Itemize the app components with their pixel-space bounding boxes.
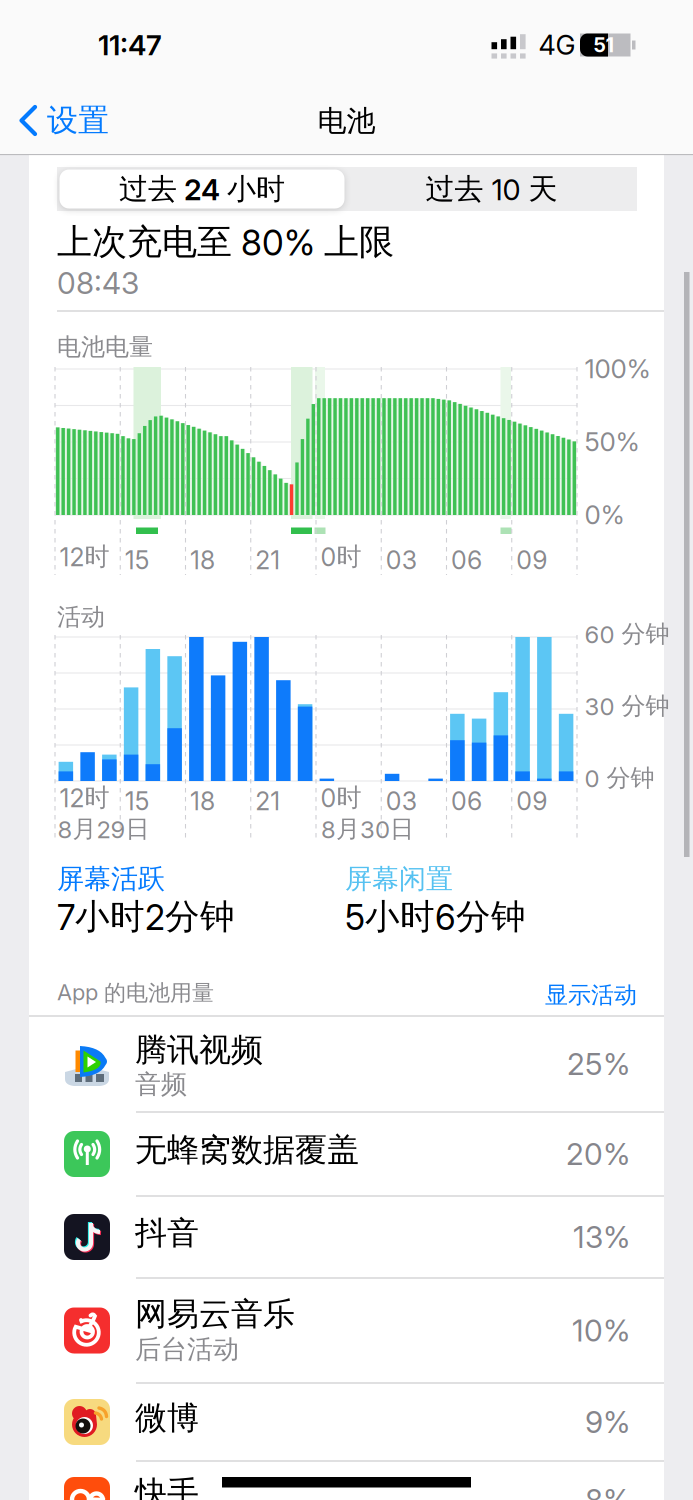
button[interactable]: 过去 10 天 bbox=[349, 169, 634, 208]
staticText: 设置 bbox=[47, 101, 109, 140]
staticText: 12时 bbox=[59, 541, 109, 572]
staticText: 过去 10 天 bbox=[425, 171, 557, 207]
staticText: 30 分钟 bbox=[584, 691, 669, 721]
button[interactable]: 设置 bbox=[19, 87, 109, 154]
staticText: 0% bbox=[584, 499, 624, 530]
button[interactable]: 腾讯视频 bbox=[29, 1016, 664, 1112]
staticText: 51 bbox=[593, 33, 614, 57]
staticText: 屏幕闲置 bbox=[345, 862, 453, 896]
staticText: 过去 24 小时 bbox=[119, 171, 285, 207]
staticText: 18 bbox=[190, 545, 215, 575]
staticText: 4G bbox=[538, 29, 575, 61]
staticText: 腾讯视频 bbox=[135, 1030, 263, 1070]
staticText: 屏幕活跃 bbox=[57, 862, 165, 896]
button[interactable]: 显示活动 bbox=[437, 973, 637, 1017]
staticText: 8% bbox=[585, 1482, 630, 1500]
staticText: 18 bbox=[190, 786, 215, 816]
staticText: 21 bbox=[255, 786, 280, 816]
button[interactable]: 无蜂窝数据覆盖 bbox=[29, 1112, 664, 1196]
staticText: 06 bbox=[451, 545, 482, 575]
staticText: 03 bbox=[386, 786, 417, 816]
staticText: 11:47 bbox=[98, 28, 162, 62]
staticText: 100% bbox=[584, 353, 650, 384]
staticText: 10% bbox=[572, 1312, 630, 1349]
staticText: 无蜂窝数据覆盖 bbox=[135, 1130, 359, 1170]
button[interactable]: 过去 24 小时 bbox=[59, 169, 344, 208]
staticText: 09 bbox=[516, 786, 547, 816]
staticText: 15 bbox=[125, 545, 150, 575]
staticText: 7小时2分钟 bbox=[57, 895, 235, 938]
staticText: 8月30日 bbox=[321, 814, 414, 844]
button[interactable]: 微博 bbox=[29, 1383, 664, 1461]
staticText: 5小时6分钟 bbox=[345, 895, 526, 938]
staticText: 9% bbox=[585, 1404, 630, 1440]
staticText: 60 分钟 bbox=[584, 619, 669, 649]
staticText: 上次充电至 80% 上限 bbox=[57, 220, 394, 264]
staticText: 08:43 bbox=[57, 265, 139, 301]
staticText: 音频 bbox=[135, 1068, 187, 1101]
staticText: 20% bbox=[566, 1136, 630, 1172]
staticText: App 的电池用量 bbox=[57, 979, 214, 1007]
staticText: 25% bbox=[567, 1046, 630, 1082]
staticText: 显示活动 bbox=[545, 980, 637, 1009]
staticText: 快手 bbox=[135, 1473, 199, 1500]
staticText: 活动 bbox=[57, 602, 105, 632]
staticText: 03 bbox=[386, 545, 417, 575]
staticText: 0时 bbox=[320, 782, 361, 813]
button[interactable]: 快手 bbox=[29, 1461, 664, 1500]
staticText: 0 分钟 bbox=[584, 763, 654, 793]
staticText: 0时 bbox=[320, 541, 361, 572]
staticText: 网易云音乐 bbox=[135, 1294, 295, 1334]
staticText: 12时 bbox=[59, 782, 109, 813]
staticText: 抖音 bbox=[135, 1213, 199, 1253]
staticText: 13% bbox=[573, 1219, 630, 1255]
staticText: 微博 bbox=[135, 1398, 199, 1438]
staticText: 06 bbox=[451, 786, 482, 816]
staticText: 电池电量 bbox=[57, 332, 153, 362]
staticText: 电池 bbox=[317, 103, 375, 139]
staticText: 09 bbox=[516, 545, 547, 575]
staticText: 15 bbox=[125, 786, 150, 816]
staticText: 8月29日 bbox=[57, 814, 149, 844]
staticText: 后台活动 bbox=[135, 1333, 239, 1366]
staticText: 50% bbox=[584, 426, 639, 457]
button[interactable]: 抖音 bbox=[29, 1196, 664, 1278]
button[interactable]: 网易云音乐 bbox=[29, 1278, 664, 1383]
staticText: 21 bbox=[255, 545, 280, 575]
